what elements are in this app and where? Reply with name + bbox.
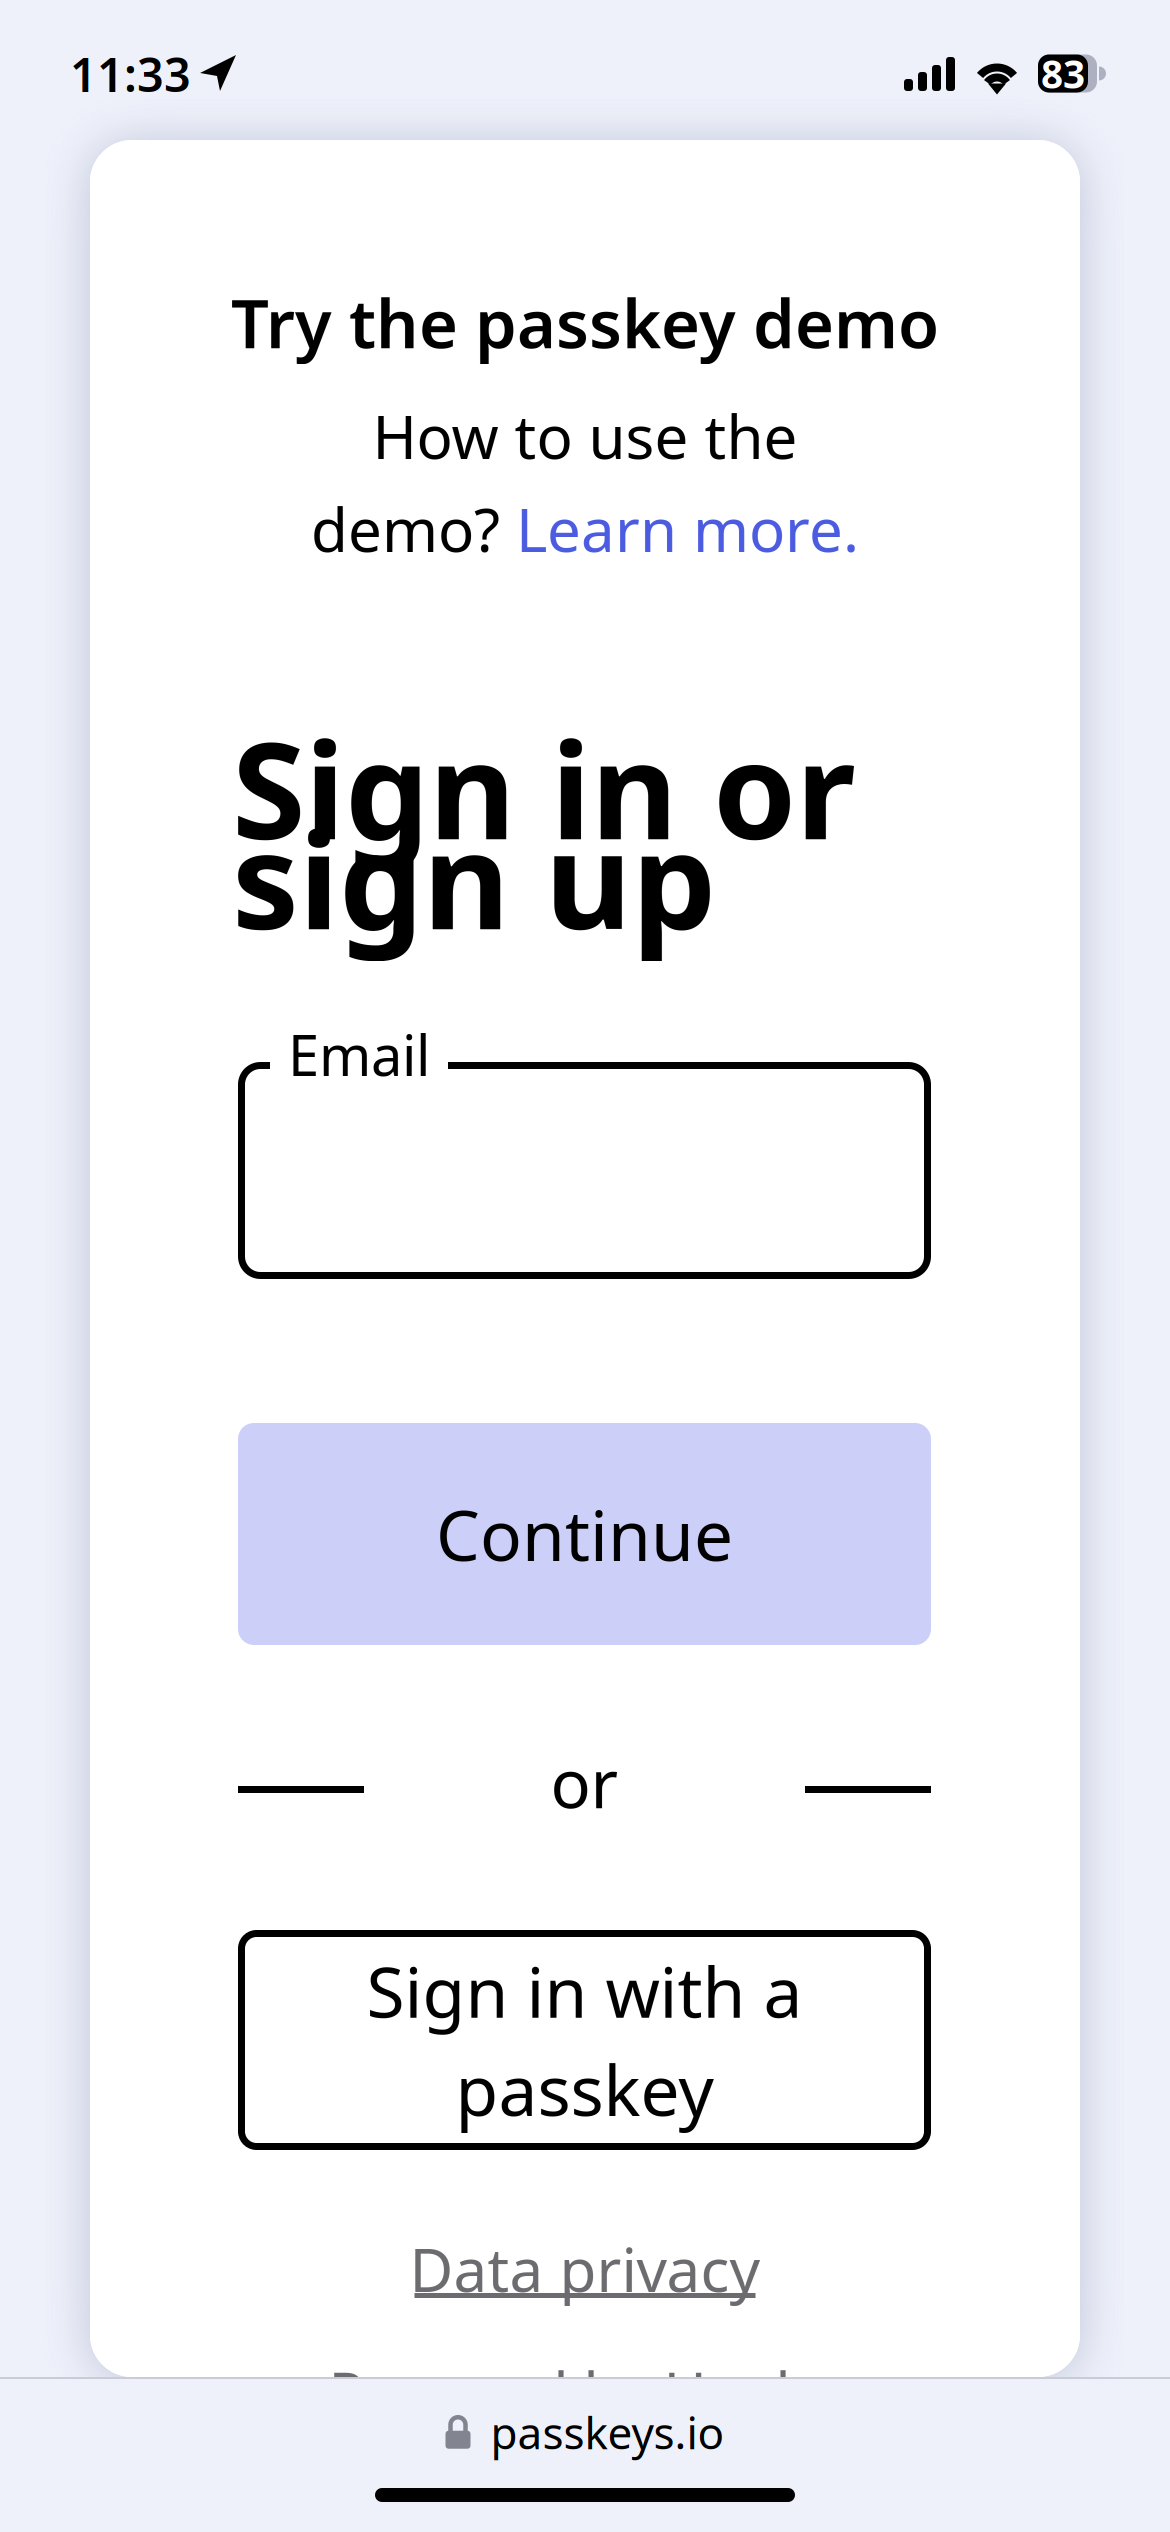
staticText: 11:33 <box>70 43 191 105</box>
staticText: or <box>550 1738 618 1826</box>
staticText: sign up <box>232 789 716 966</box>
button[interactable]: Learn more. <box>516 489 859 569</box>
button[interactable]: passkeys.io <box>445 2403 724 2461</box>
button[interactable]: Data privacy <box>90 2229 1080 2299</box>
staticText: Try the passkey demo <box>231 278 939 366</box>
staticText: Email <box>288 1017 430 1091</box>
staticText: Powered by Hanko <box>328 2353 841 2431</box>
staticText: 83 <box>1041 48 1085 99</box>
staticText: passkeys.io <box>490 2403 724 2461</box>
button[interactable]: Continue <box>238 1423 931 1645</box>
staticText: Data privacy <box>409 2229 760 2309</box>
staticText: Continue <box>436 1488 733 1580</box>
staticText: Learn more. <box>516 489 859 569</box>
staticText: passkey <box>455 2043 713 2135</box>
staticText: demo? <box>311 489 516 569</box>
staticText: How to use the <box>372 396 797 476</box>
button[interactable]: Sign in with a <box>238 1930 931 2150</box>
staticText: Sign in or <box>232 699 856 876</box>
staticText: Sign in with a <box>366 1945 802 2037</box>
